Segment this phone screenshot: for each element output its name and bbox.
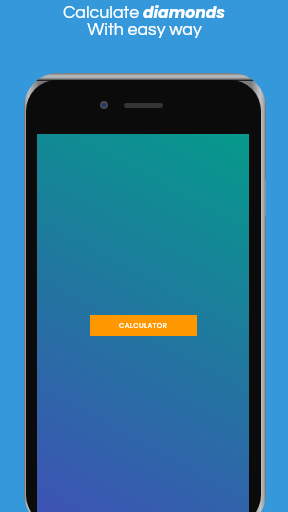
staticText: CALCULATOR: [119, 321, 168, 331]
button[interactable]: CALCULATOR: [90, 315, 197, 336]
staticText: Calculate diamonds: [63, 2, 225, 24]
staticText: With easy way: [87, 20, 202, 38]
